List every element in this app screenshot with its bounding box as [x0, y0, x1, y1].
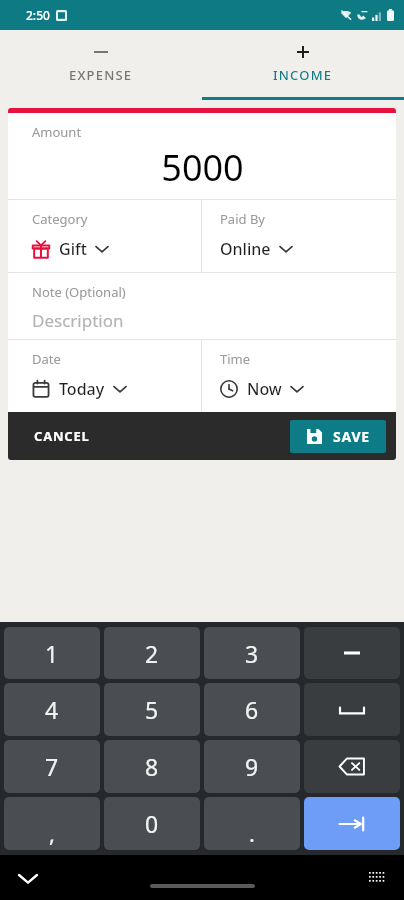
staticText: 4 [45, 694, 59, 725]
button[interactable]: Minus [304, 627, 400, 679]
staticText: 3 [245, 638, 259, 669]
staticText: Date [32, 350, 61, 368]
staticText: INCOME [273, 66, 333, 84]
staticText: 7 [45, 751, 59, 782]
staticText: Category [32, 210, 88, 228]
staticText: Now [247, 378, 282, 400]
button[interactable]: 7 [4, 740, 100, 793]
button[interactable]: 8 [104, 740, 200, 793]
button[interactable]: 2 [104, 627, 200, 679]
button[interactable]: Space [304, 683, 400, 736]
button[interactable]: 3 [204, 627, 300, 679]
button[interactable]: Backspace [304, 740, 400, 793]
button[interactable]: Next [304, 797, 400, 850]
staticText: , [49, 818, 55, 848]
staticText: Note (Optional) [32, 283, 126, 301]
staticText: 1 [45, 638, 59, 669]
staticText: Online [220, 238, 271, 260]
button[interactable]: 0 [104, 797, 200, 850]
staticText: Description [32, 309, 124, 332]
button[interactable]: EXPENSE [0, 30, 202, 100]
staticText: SAVE [333, 427, 370, 446]
staticText: Today [59, 378, 105, 400]
staticText: 5000 [161, 143, 244, 192]
staticText: 0 [145, 808, 159, 839]
staticText: 8 [145, 751, 159, 782]
button[interactable]: , [4, 797, 100, 850]
staticText: . [249, 818, 255, 848]
staticText: Paid By [220, 210, 265, 228]
button[interactable]: 9 [204, 740, 300, 793]
button[interactable]: INCOME [202, 30, 404, 100]
button[interactable]: Note (Optional) [8, 273, 396, 339]
button[interactable]: SAVE [290, 420, 386, 453]
button[interactable]: 6 [204, 683, 300, 736]
button[interactable]: Date [8, 340, 201, 412]
button[interactable]: 4 [4, 683, 100, 736]
staticText: Time [220, 350, 251, 368]
staticText: 5 [145, 694, 159, 725]
button[interactable]: Hide keyboard [10, 860, 46, 896]
button[interactable]: . [204, 797, 300, 850]
button[interactable]: 5 [104, 683, 200, 736]
staticText: Amount [32, 123, 82, 141]
button[interactable]: Paid By [202, 200, 396, 272]
staticText: CANCEL [34, 427, 90, 445]
staticText: 2:50 [26, 7, 50, 23]
button[interactable]: Time [202, 340, 396, 412]
staticText: 2 [145, 638, 159, 669]
button[interactable]: Category [8, 200, 201, 272]
staticText: EXPENSE [69, 66, 133, 84]
button[interactable]: Switch keyboard [362, 863, 392, 893]
button[interactable]: CANCEL [8, 412, 116, 460]
staticText: Gift [59, 238, 87, 260]
button[interactable]: 1 [4, 627, 100, 679]
staticText: 6 [245, 694, 259, 725]
staticText: 9 [245, 751, 259, 782]
